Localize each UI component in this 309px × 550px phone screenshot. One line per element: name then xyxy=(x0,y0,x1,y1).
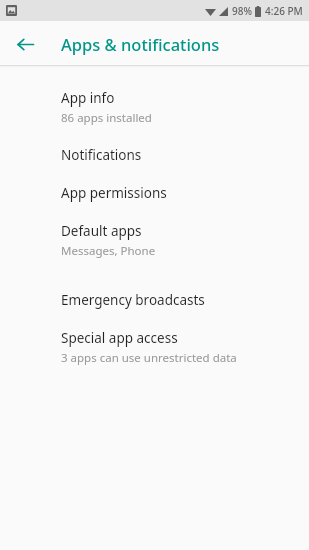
button[interactable]: Default apps xyxy=(0,212,309,269)
staticText: Messages, Phone xyxy=(61,243,156,259)
button[interactable]: Notifications xyxy=(0,136,309,174)
staticText: 98% xyxy=(232,4,252,18)
staticText: App permissions xyxy=(61,184,167,202)
button[interactable]: App permissions xyxy=(0,174,309,212)
button[interactable]: Back xyxy=(11,30,39,58)
button[interactable]: App info xyxy=(0,79,309,136)
staticText: 4:26 PM xyxy=(265,4,303,18)
staticText: Default apps xyxy=(61,222,142,240)
staticText: Special app access xyxy=(61,329,178,347)
staticText: 3 apps can use unrestricted data xyxy=(61,350,237,366)
button[interactable]: Emergency broadcasts xyxy=(0,281,309,319)
staticText: App info xyxy=(61,89,115,107)
staticText: 86 apps installed xyxy=(61,110,152,126)
staticText: Notifications xyxy=(61,146,142,164)
staticText: Emergency broadcasts xyxy=(61,291,205,309)
staticText: Apps & notifications xyxy=(61,33,220,55)
button[interactable]: Special app access xyxy=(0,319,309,376)
